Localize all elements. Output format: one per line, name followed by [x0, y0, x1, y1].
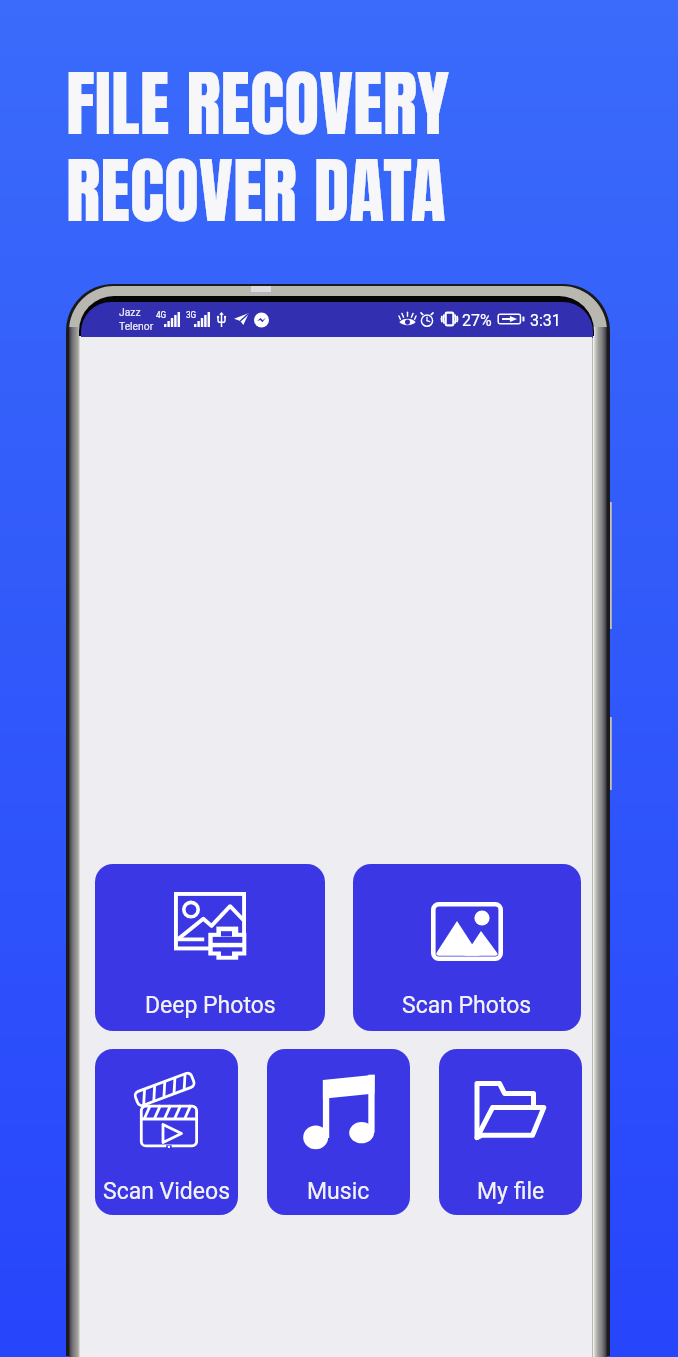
staticText: Scan Videos: [103, 1178, 231, 1205]
staticText: RECOVER DATA: [66, 136, 446, 244]
staticText: Deep Photos: [145, 992, 276, 1019]
button[interactable]: My file: [439, 1049, 582, 1215]
button[interactable]: Scan Photos: [353, 864, 581, 1031]
staticText: FILE RECOVERY: [66, 49, 450, 157]
staticText: Jazz: [119, 306, 141, 318]
staticText: Scan Photos: [402, 992, 532, 1019]
button[interactable]: Deep Photos: [95, 864, 325, 1031]
button[interactable]: Music: [267, 1049, 410, 1215]
staticText: Music: [307, 1178, 370, 1205]
staticText: My file: [477, 1178, 545, 1205]
staticText: 3:31: [530, 311, 561, 330]
staticText: 4G: [156, 310, 167, 320]
staticText: 27%: [462, 311, 492, 330]
staticText: 3G: [186, 310, 197, 320]
staticText: Telenor: [119, 320, 154, 332]
button[interactable]: Scan Videos: [95, 1049, 238, 1215]
